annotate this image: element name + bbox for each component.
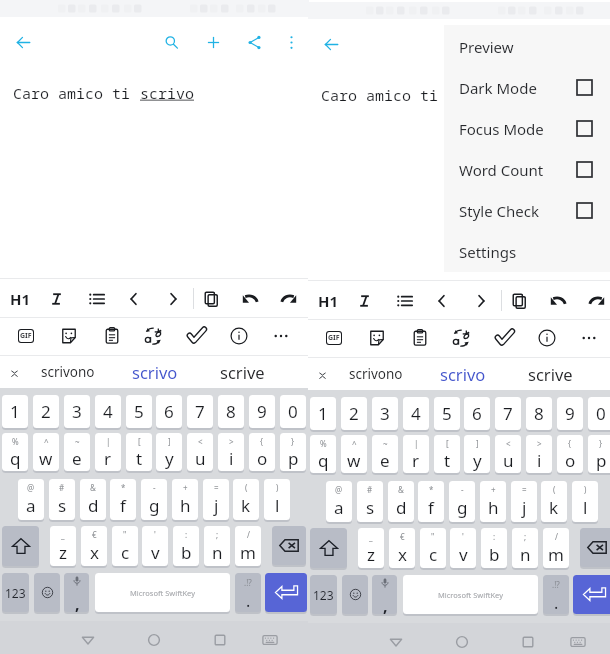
button[interactable]: 3 (64, 395, 90, 428)
button[interactable]: Tool (120, 285, 148, 313)
button[interactable]: @ (18, 479, 44, 520)
button[interactable]: Recents (206, 626, 234, 654)
button[interactable]: Back (315, 28, 347, 60)
button[interactable]: Enter (265, 573, 307, 612)
button[interactable]: = (511, 481, 537, 522)
button[interactable]: .!? (235, 573, 261, 612)
button[interactable]: Search (463, 28, 495, 60)
button[interactable]: Shift (310, 528, 347, 568)
button[interactable]: 8 (218, 395, 244, 428)
button[interactable]: + (480, 481, 506, 522)
button[interactable]: Tool (140, 322, 168, 350)
button[interactable]: GIF (12, 322, 40, 350)
button[interactable]: GIF (320, 324, 348, 352)
button[interactable]: 0 (280, 395, 306, 428)
button[interactable]: 7 (187, 395, 213, 428)
button[interactable]: Tool (391, 287, 419, 315)
button[interactable]: : (173, 526, 199, 566)
button[interactable]: Collapse (317, 370, 328, 381)
button[interactable]: & (388, 481, 414, 522)
button[interactable]: 0 (588, 397, 610, 430)
button[interactable]: Enter (573, 575, 610, 614)
button[interactable]: 1 (2, 395, 28, 428)
button[interactable]: Search (155, 26, 187, 58)
button[interactable]: Heading 1 (6, 285, 34, 313)
button[interactable]: } (280, 433, 306, 471)
button[interactable]: 2 (33, 395, 59, 428)
button[interactable]: 3 (372, 397, 398, 430)
button[interactable]: { (249, 433, 275, 471)
button[interactable]: | (95, 433, 121, 471)
button[interactable]: : (481, 528, 507, 568)
button[interactable]: Space (95, 573, 230, 612)
button[interactable]: ] (464, 435, 490, 473)
button[interactable]: scrivo (120, 355, 190, 388)
button[interactable]: Back (382, 628, 410, 654)
button[interactable]: Tool (467, 287, 495, 315)
button[interactable]: Tool (159, 285, 187, 313)
button[interactable]: = (203, 479, 229, 520)
button[interactable]: Emoji (342, 575, 368, 614)
button[interactable]: 123 (2, 573, 29, 612)
button[interactable]: 123 (310, 575, 337, 614)
button[interactable]: scrivo (428, 357, 498, 390)
button[interactable]: Word Count (444, 150, 610, 190)
button[interactable]: 4 (403, 397, 429, 430)
button[interactable]: ) (572, 481, 598, 522)
button[interactable]: Tool (533, 324, 561, 352)
button[interactable]: < (187, 433, 213, 471)
button[interactable]: } (588, 435, 610, 473)
button[interactable]: 8 (526, 397, 552, 430)
button[interactable]: - (141, 479, 167, 520)
button[interactable]: Dark Mode (444, 68, 610, 108)
button[interactable]: " (420, 528, 446, 568)
button[interactable]: More options (275, 26, 307, 58)
button[interactable]: " (112, 526, 138, 566)
button[interactable]: 4 (95, 395, 121, 428)
button[interactable]: * (418, 481, 444, 522)
button[interactable]: Focus Mode (444, 109, 610, 149)
button[interactable]: Tool (583, 287, 610, 315)
button[interactable]: Back (7, 26, 39, 58)
button[interactable]: Tool (43, 285, 71, 313)
button[interactable]: Tool (363, 324, 391, 352)
button[interactable]: ( (233, 479, 259, 520)
button[interactable]: 9 (249, 395, 275, 428)
button[interactable]: 6 (464, 397, 490, 430)
button[interactable]: ~ (64, 433, 90, 471)
button[interactable]: Collapse (9, 368, 20, 379)
button[interactable]: - (449, 481, 475, 522)
button[interactable]: % (310, 435, 336, 473)
button[interactable]: * (110, 479, 136, 520)
button[interactable]: 7 (495, 397, 521, 430)
button[interactable]: 6 (156, 395, 182, 428)
button[interactable]: Tool (183, 322, 211, 350)
button[interactable]: Tool (448, 324, 476, 352)
button[interactable]: € (81, 526, 107, 566)
button[interactable]: 5 (434, 397, 460, 430)
button[interactable]: Tool (575, 324, 603, 352)
button[interactable]: Voice input (64, 573, 89, 612)
button[interactable]: Recents (514, 628, 542, 654)
button[interactable]: Back (74, 626, 102, 654)
button[interactable]: Space (403, 575, 538, 614)
button[interactable]: ~ (372, 435, 398, 473)
button[interactable]: < (495, 435, 521, 473)
button[interactable]: % (2, 433, 28, 471)
button[interactable]: Heading 1 (314, 287, 342, 315)
button[interactable]: { (557, 435, 583, 473)
button[interactable]: > (526, 435, 552, 473)
button[interactable]: [ (434, 435, 460, 473)
button[interactable]: ) (264, 479, 290, 520)
button[interactable]: ^ (33, 433, 59, 471)
button[interactable]: Add (505, 28, 537, 60)
button[interactable]: Backspace (272, 526, 306, 565)
button[interactable]: Style Check (444, 191, 610, 231)
button[interactable]: 5 (126, 395, 152, 428)
button[interactable]: Tool (544, 287, 572, 315)
button[interactable]: scrivono (28, 355, 108, 388)
button[interactable]: / (543, 528, 569, 568)
button[interactable]: Tool (225, 322, 253, 350)
